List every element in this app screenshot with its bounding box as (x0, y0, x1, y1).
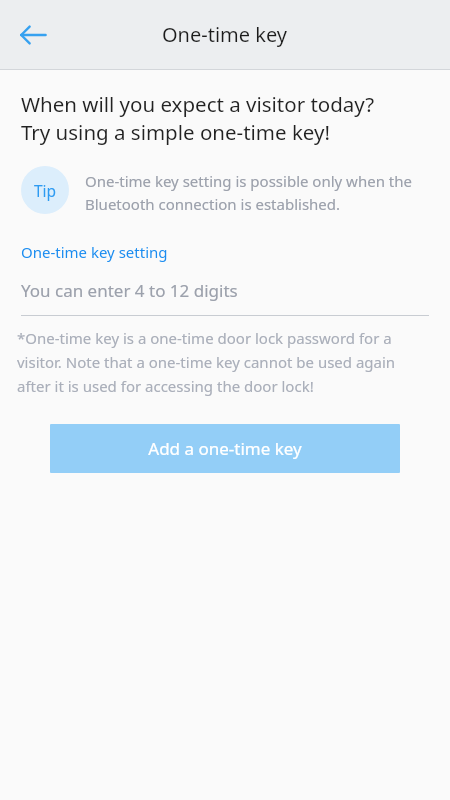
staticText: Add a one-time key (148, 437, 302, 460)
staticText: When will you expect a visitor today? (21, 90, 375, 118)
staticText: Tip (34, 180, 57, 201)
staticText: One-time key (162, 21, 288, 48)
button[interactable]: One-time key setting (0, 242, 450, 316)
staticText: One-time key setting (21, 242, 168, 262)
staticText: Try using a simple one-time key! (21, 118, 330, 146)
button[interactable]: Back (9, 11, 57, 59)
button[interactable]: Add a one-time key (50, 424, 400, 473)
staticText: *One-time key is a one-time door lock pa… (17, 328, 432, 396)
staticText: You can enter 4 to 12 digits (21, 279, 238, 302)
staticText: One-time key setting is possible only wh… (85, 171, 432, 214)
